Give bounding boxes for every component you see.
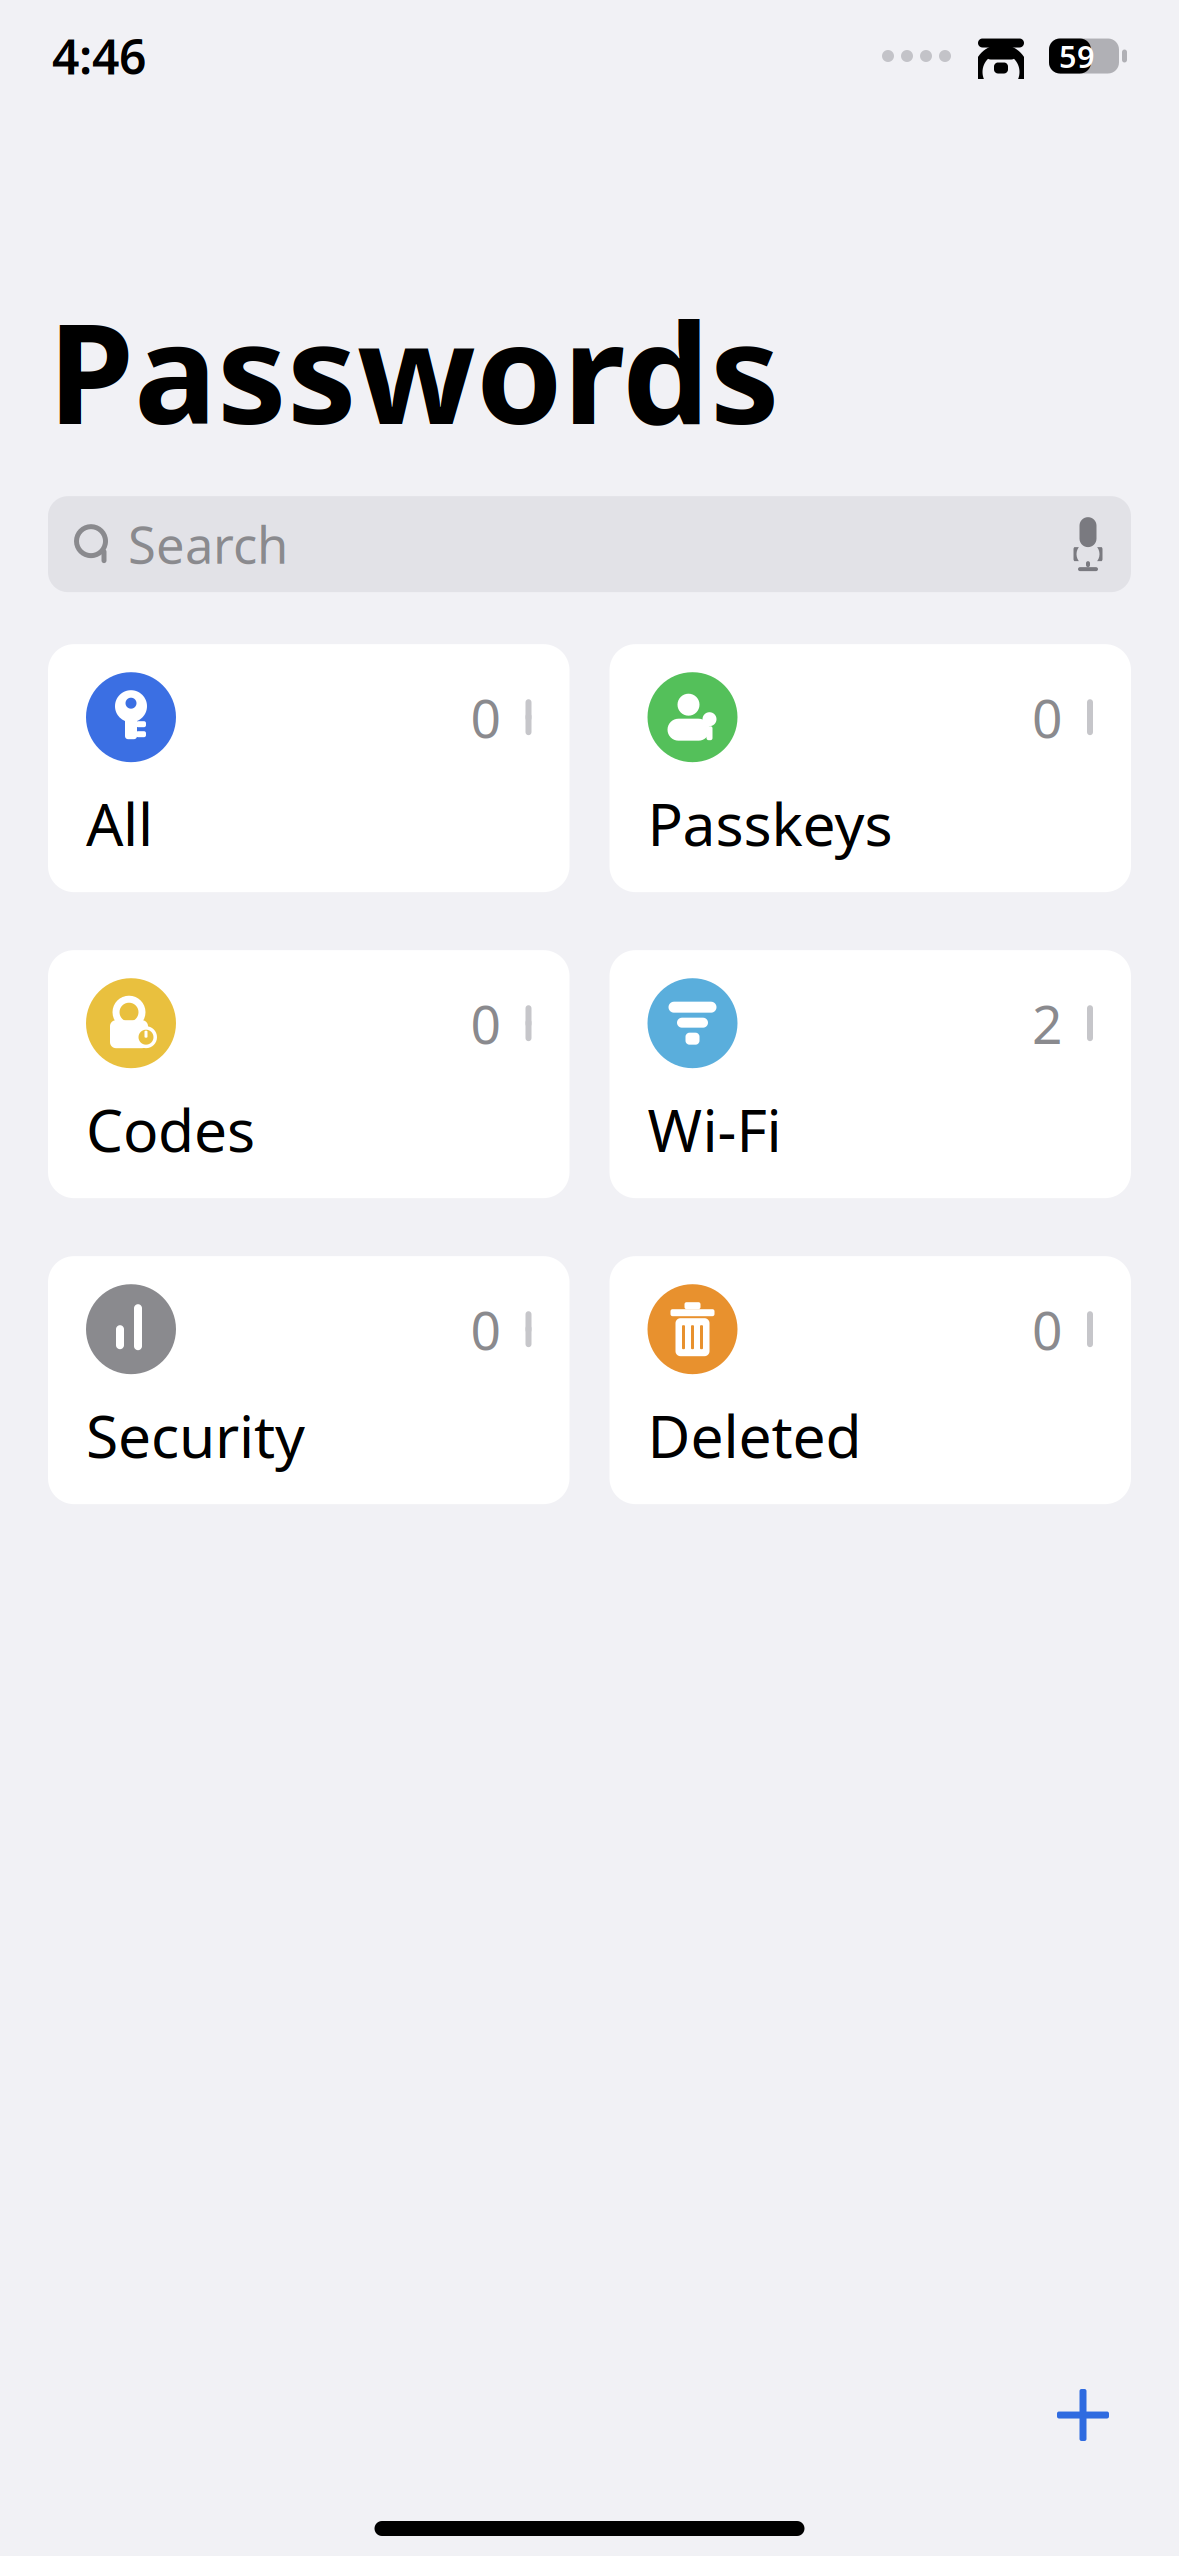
staticText: 0 (470, 1294, 501, 1365)
staticText: 0 (1032, 1294, 1063, 1365)
staticText: Codes (86, 1090, 255, 1168)
button[interactable]: 2 (609, 950, 1131, 1198)
button[interactable]: Add Password (1039, 2371, 1127, 2459)
staticText: 4:46 (52, 24, 146, 88)
button[interactable]: 0 (48, 1256, 569, 1504)
staticText: Security (86, 1396, 305, 1474)
staticText: Search (128, 510, 288, 578)
staticText: 0 (1032, 682, 1063, 753)
button[interactable]: Search (48, 496, 1131, 592)
staticText: 2 (1032, 988, 1063, 1059)
staticText: Passkeys (647, 784, 892, 862)
button[interactable]: 0 (609, 644, 1131, 892)
button[interactable]: 0 (48, 644, 569, 892)
staticText: Passwords (48, 278, 780, 462)
staticText: 59 (1059, 36, 1095, 76)
staticText: All (86, 784, 153, 862)
staticText: Wi-Fi (647, 1090, 781, 1168)
button[interactable]: 0 (609, 1256, 1131, 1504)
staticText: Deleted (647, 1396, 861, 1474)
staticText: 0 (470, 988, 501, 1059)
button[interactable]: 0 (48, 950, 569, 1198)
staticText: 0 (470, 682, 501, 753)
